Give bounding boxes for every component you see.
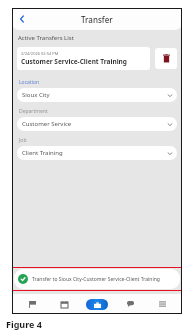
button[interactable]: Client Training [17,146,177,160]
staticText: Transfer [81,14,113,25]
staticText: Customer Service-Client Training [21,57,127,66]
button[interactable]: Delete transfer [155,48,177,69]
staticText: Transfer to Sioux City-Customer Service-… [32,276,176,283]
button[interactable]: Schedule [51,295,77,313]
staticText: Client Training [22,149,168,157]
staticText: Figure 4 [6,318,42,330]
staticText: Active Transfers List [18,34,74,42]
button[interactable]: 2/24/2026 02:54 PM [17,47,150,70]
staticText: Location [19,79,40,86]
button[interactable]: More [149,295,175,313]
button[interactable]: Flags [19,295,45,313]
staticText: Job [19,137,27,144]
button[interactable]: Customer Service [17,117,177,131]
button[interactable]: Messages [117,295,143,313]
button[interactable]: Sioux City [17,88,177,102]
staticText: Department [19,108,48,115]
staticText: Sioux City [22,91,168,99]
staticText: Customer Service [22,120,168,128]
button[interactable]: Back [15,12,29,26]
button[interactable]: Transfer to Sioux City-Customer Service-… [14,269,180,289]
staticText: 2/24/2026 02:54 PM [21,51,59,56]
button[interactable]: Jobs [84,295,110,313]
